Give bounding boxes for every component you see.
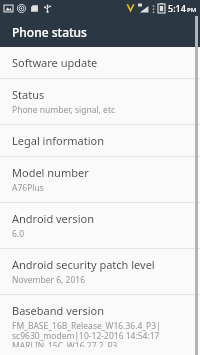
button[interactable]: Android security patch level bbox=[0, 249, 200, 294]
staticText: Software update bbox=[12, 55, 98, 70]
staticText: FM_BASE_16B_Release_W16.36.4_P3| sc9630_… bbox=[12, 320, 161, 347]
button[interactable]: Model number bbox=[0, 157, 200, 202]
staticText: 5:14 bbox=[168, 2, 186, 14]
staticText: Phone number, signal, etc bbox=[12, 104, 116, 116]
staticText: PM bbox=[187, 6, 197, 14]
button[interactable]: Status bbox=[0, 79, 200, 124]
staticText: Model number bbox=[12, 165, 89, 180]
button[interactable]: Software update bbox=[0, 47, 200, 78]
staticText: A76Plus bbox=[12, 182, 44, 194]
button[interactable]: Phone status bbox=[0, 16, 200, 47]
staticText: Phone status bbox=[12, 24, 87, 40]
button[interactable]: Legal information bbox=[0, 125, 200, 156]
button[interactable]: Android version bbox=[0, 203, 200, 248]
staticText: 6.0 bbox=[12, 228, 25, 240]
staticText: Android security patch level bbox=[12, 257, 155, 272]
staticText: Android version bbox=[12, 211, 94, 226]
staticText: November 6, 2016 bbox=[12, 274, 86, 286]
staticText: Baseband version bbox=[12, 303, 105, 318]
button[interactable]: Baseband version bbox=[0, 295, 200, 355]
staticText: Status bbox=[12, 87, 45, 102]
staticText: Legal information bbox=[12, 133, 104, 148]
